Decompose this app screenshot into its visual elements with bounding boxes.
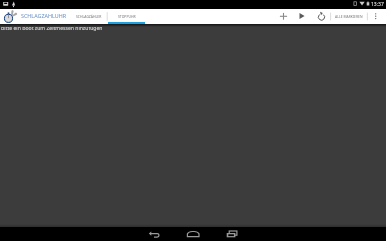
staticText: ALLE MARKIEREN — [335, 14, 363, 19]
staticText: Bitte ein Boot zum Zeitmessen hinzufügen — [1, 25, 103, 32]
button[interactable]: Hinzufügen — [277, 10, 290, 23]
button[interactable]: Start — [296, 10, 309, 23]
staticText: 13:37 — [371, 1, 384, 8]
staticText: SCHLAGZAHLUHR — [21, 12, 67, 19]
button[interactable]: ALLE MARKIEREN — [332, 9, 366, 24]
staticText: STOPPUHR — [118, 14, 136, 19]
button[interactable]: SCHLAGZÄHLER — [70, 9, 108, 24]
button[interactable]: STOPPUHR — [108, 9, 145, 24]
button[interactable]: Weitere Optionen — [369, 10, 382, 23]
staticText: SCHLAGZÄHLER — [76, 14, 102, 19]
button[interactable]: Zurücksetzen — [315, 10, 328, 23]
